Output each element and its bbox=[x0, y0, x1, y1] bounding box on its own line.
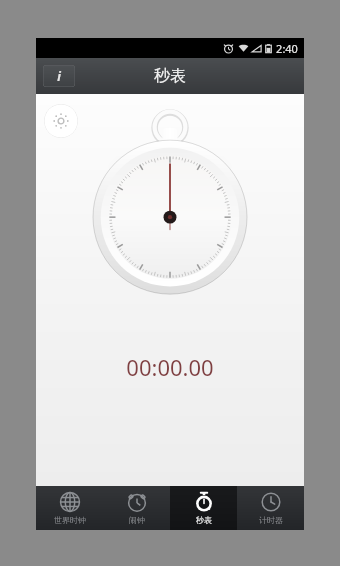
staticText: 计时器 bbox=[259, 515, 283, 525]
staticText: 秒表 bbox=[154, 66, 186, 86]
staticText: 闹钟 bbox=[129, 515, 145, 525]
staticText: i bbox=[57, 68, 61, 84]
button[interactable]: 闹钟 bbox=[103, 486, 170, 530]
staticText: 世界时钟 bbox=[54, 515, 86, 525]
staticText: 秒表 bbox=[196, 515, 212, 525]
button[interactable]: Info bbox=[43, 65, 75, 87]
button[interactable]: 计时器 bbox=[237, 486, 304, 530]
button[interactable]: Brightness bbox=[44, 104, 78, 138]
button[interactable]: 秒表 bbox=[170, 486, 237, 530]
staticText: 2:40 bbox=[276, 41, 298, 56]
button[interactable]: 世界时钟 bbox=[36, 486, 103, 530]
staticText: 00:00.00 bbox=[126, 352, 214, 382]
